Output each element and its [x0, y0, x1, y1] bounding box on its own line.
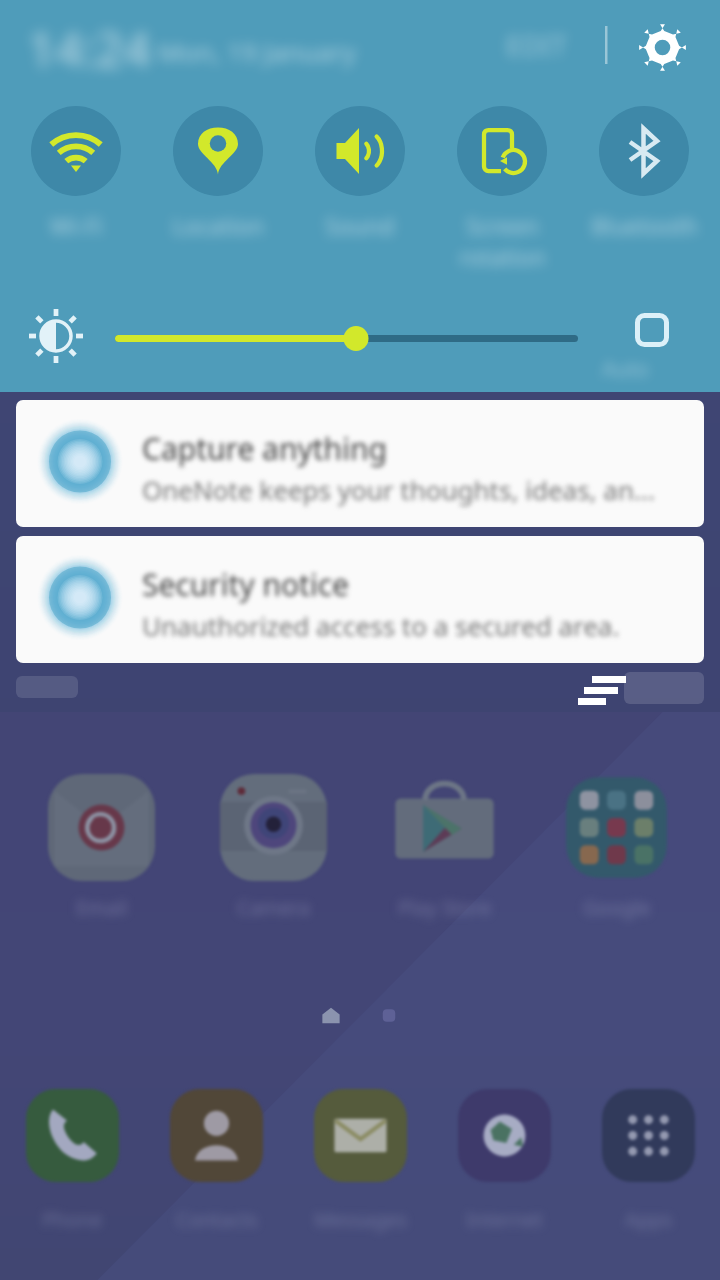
button[interactable]: Wi-Fi: [5, 92, 147, 241]
staticText: Location: [172, 210, 265, 241]
staticText: Apps: [625, 1206, 672, 1233]
button[interactable]: Internet: [458, 1089, 551, 1182]
button[interactable]: Camera: [220, 774, 327, 881]
staticText: Mon, 19 January: [158, 34, 357, 69]
button[interactable]: Capture anything: [16, 400, 704, 527]
staticText: EDIT: [506, 26, 568, 64]
staticText: Screen: [466, 210, 539, 241]
button[interactable]: Contacts: [170, 1089, 263, 1182]
button[interactable]: Bluetooth: [573, 92, 715, 241]
staticText: Auto: [602, 355, 649, 384]
button[interactable]: Messages: [314, 1089, 407, 1182]
staticText: Play Store: [398, 894, 492, 921]
staticText: Security notice: [142, 564, 349, 605]
button[interactable]: Phone: [26, 1089, 119, 1182]
staticText: Phone: [42, 1206, 103, 1233]
staticText: Sound: [325, 210, 395, 241]
button[interactable]: Sound: [289, 92, 431, 241]
staticText: Messages: [314, 1206, 407, 1233]
staticText: Camera: [237, 894, 310, 921]
staticText: Unauthorized access to a secured area.: [142, 608, 620, 643]
staticText: Internet: [466, 1206, 543, 1233]
button[interactable]: Security notice: [16, 536, 704, 663]
staticText: Email: [76, 894, 128, 921]
staticText: OneNote keeps your thoughts, ideas, an..…: [142, 472, 655, 507]
button[interactable]: Settings: [633, 18, 691, 76]
staticText: 14:24: [28, 16, 151, 81]
button[interactable]: Google: [563, 774, 670, 881]
button[interactable]: Email: [48, 774, 155, 881]
button[interactable]: Apps: [602, 1089, 695, 1182]
button[interactable]: Screen rotation: [431, 92, 573, 272]
staticText: Capture anything: [142, 428, 387, 469]
button[interactable]: Play Store: [391, 774, 498, 881]
button[interactable]: Auto brightness: [634, 312, 670, 348]
staticText: Contacts: [176, 1206, 258, 1233]
staticText: rotation: [459, 241, 546, 272]
staticText: Google: [583, 894, 651, 921]
button[interactable]: Location: [147, 92, 289, 241]
staticText: Bluetooth: [591, 210, 698, 241]
staticText: Wi-Fi: [50, 210, 103, 241]
